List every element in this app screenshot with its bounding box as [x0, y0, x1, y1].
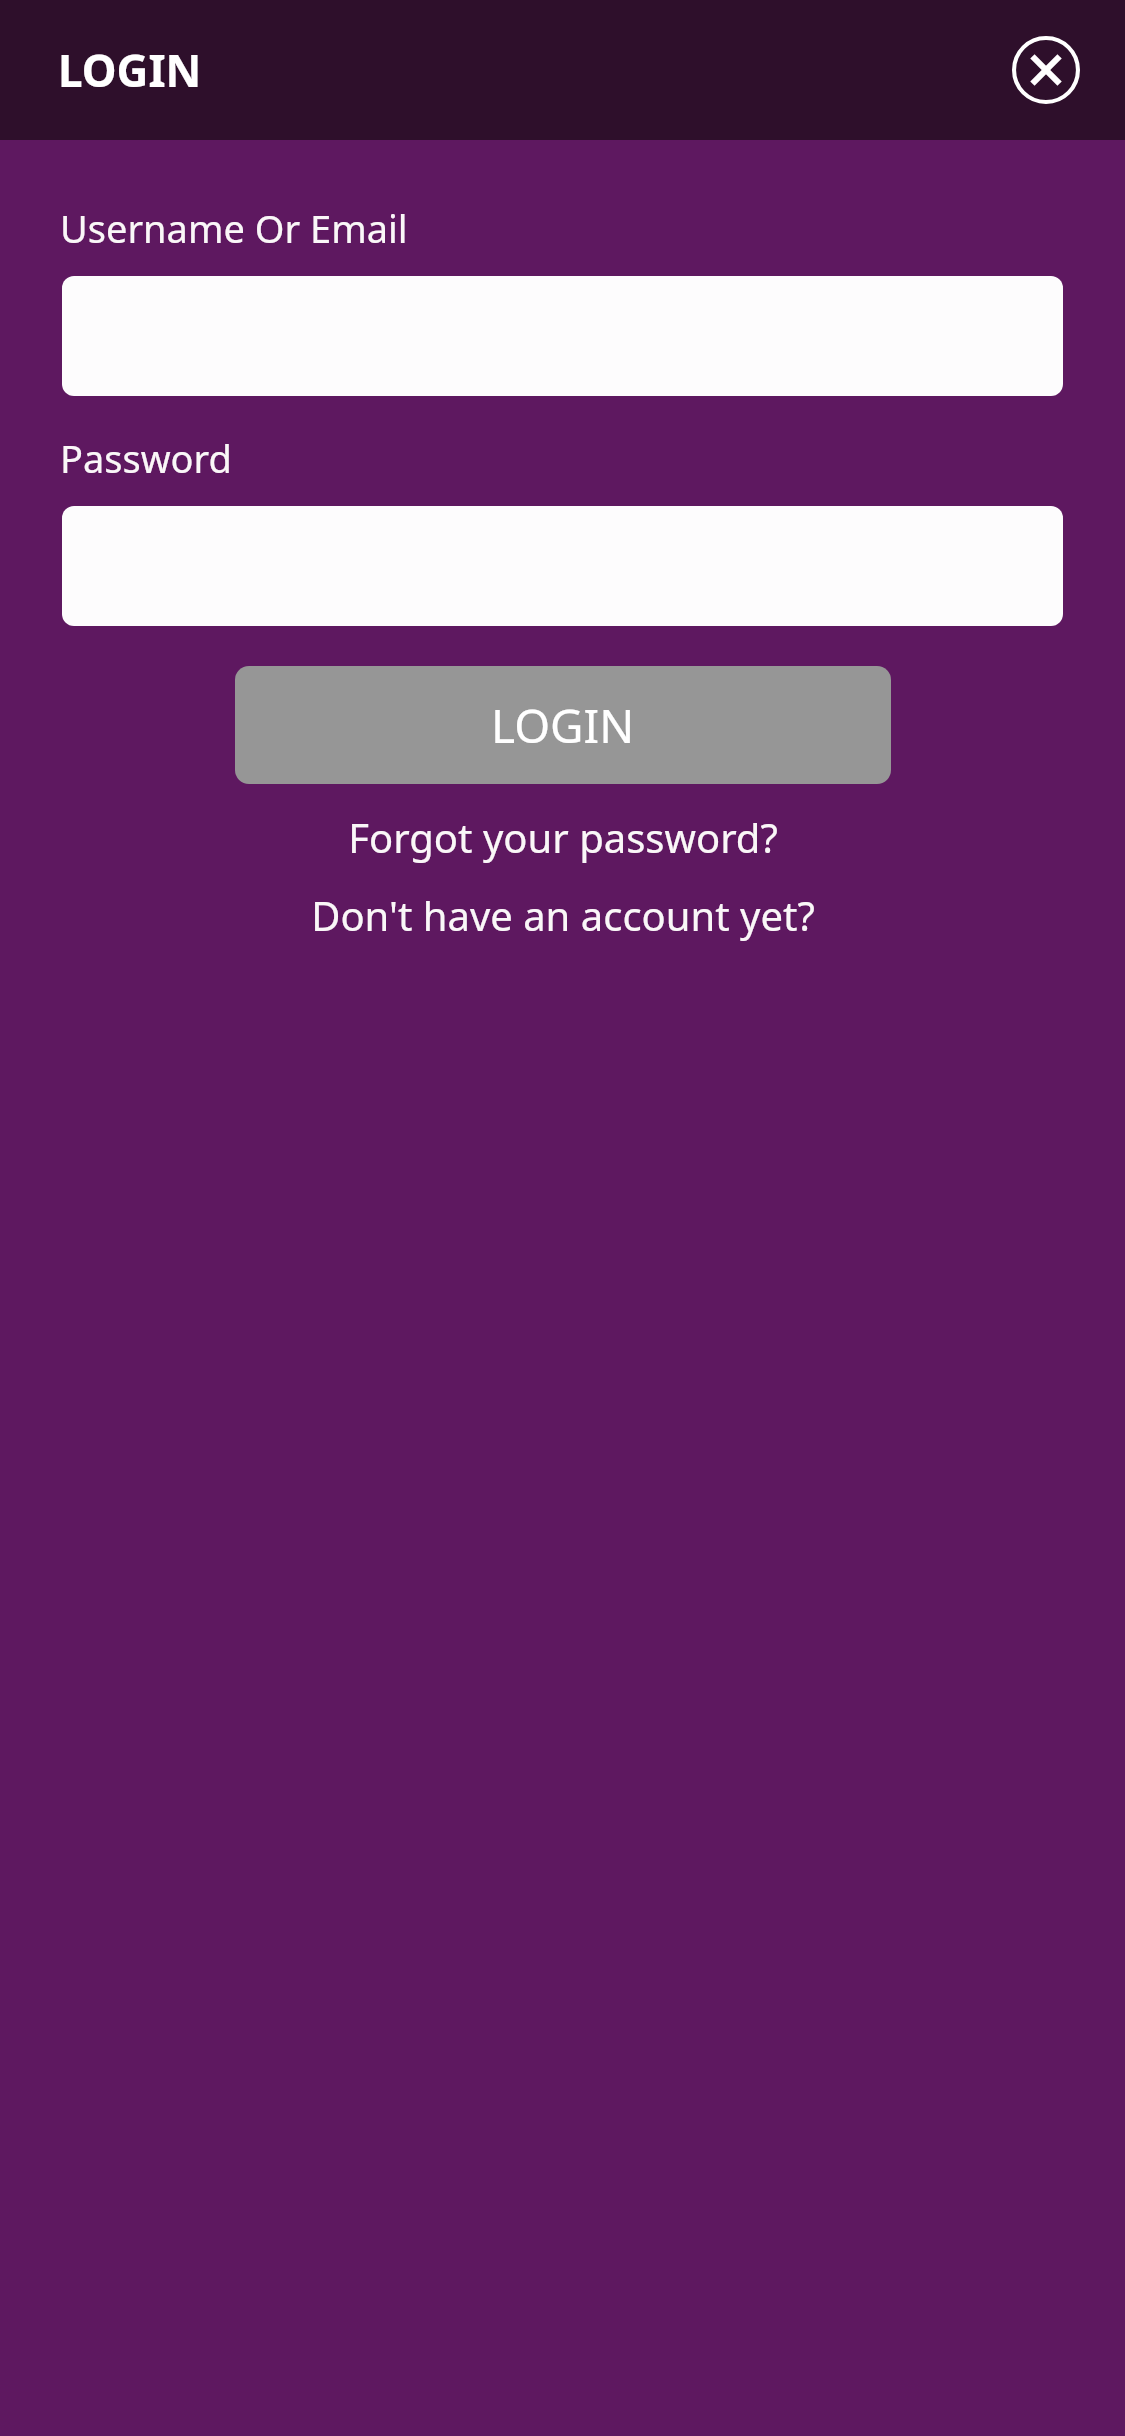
staticText: Don't have an account yet? [311, 888, 815, 942]
button[interactable]: Forgot your password? [0, 804, 1125, 870]
staticText: Username Or Email [60, 202, 408, 254]
staticText: LOGIN [58, 40, 202, 100]
staticText: Password [60, 432, 232, 484]
button[interactable]: Close [1003, 27, 1089, 113]
button[interactable] [62, 276, 1063, 396]
staticText: Forgot your password? [348, 810, 778, 864]
button[interactable] [62, 506, 1063, 626]
button[interactable]: Don't have an account yet? [0, 882, 1125, 948]
staticText: LOGIN [491, 694, 635, 757]
button[interactable]: LOGIN [235, 666, 891, 784]
